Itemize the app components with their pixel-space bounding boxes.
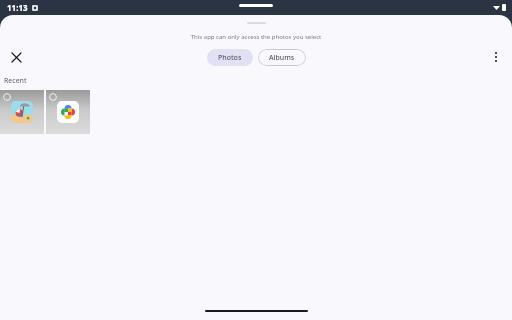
button[interactable]: More options [485, 46, 507, 68]
staticText: Photos [218, 53, 242, 63]
button[interactable]: Albums [258, 49, 306, 66]
button[interactable]: Close [5, 46, 27, 68]
staticText: Albums [269, 53, 295, 63]
button[interactable] [46, 90, 90, 134]
staticText: Recent [4, 76, 27, 86]
button[interactable]: Photos [207, 49, 253, 66]
button[interactable] [0, 90, 44, 134]
staticText: 11:13 [7, 2, 28, 13]
staticText: This app can only access the photos you … [0, 33, 512, 41]
